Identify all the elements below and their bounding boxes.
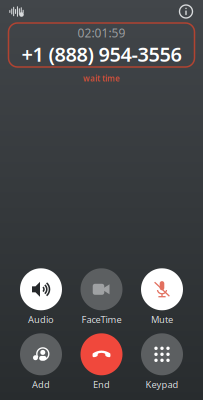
staticText: Keypad [145,378,178,391]
button[interactable]: Mute [133,267,191,327]
staticText: Add [32,378,50,391]
button[interactable]: FaceTime [72,267,130,327]
button[interactable]: Keypad [133,332,191,392]
staticText: Audio [28,313,54,326]
button[interactable]: End [72,332,130,392]
staticText: Mute [151,313,173,326]
staticText: +1 (888) 954-3556 [21,41,181,67]
staticText: FaceTime [81,313,121,326]
staticText: wait time [83,73,120,84]
staticText: End [93,378,110,391]
button[interactable]: Audio [12,267,70,327]
button[interactable]: Call info [179,4,193,18]
staticText: 02:01:59 [77,25,125,41]
button[interactable]: Add [12,332,70,392]
